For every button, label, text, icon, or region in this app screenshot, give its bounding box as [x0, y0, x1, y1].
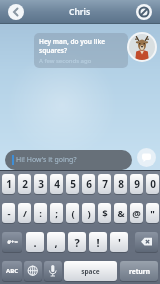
button[interactable]: ,: [47, 232, 65, 252]
button[interactable]: [136, 4, 152, 20]
button[interactable]: Hi! How's it going?: [5, 150, 132, 170]
staticText: !: [96, 235, 100, 250]
staticText: 8: [118, 177, 124, 191]
staticText: .: [33, 235, 37, 250]
staticText: #+=: [7, 238, 18, 246]
staticText: Hi! How's it going?: [16, 155, 77, 165]
button[interactable]: [8, 4, 24, 20]
button[interactable]: 1: [2, 174, 15, 194]
button[interactable]: 5: [66, 174, 79, 194]
button[interactable]: 3: [34, 174, 47, 194]
button[interactable]: [44, 261, 62, 281]
button[interactable]: #+=: [2, 232, 22, 252]
staticText: 2: [22, 177, 28, 191]
button[interactable]: [127, 32, 157, 62]
staticText: return: [129, 267, 150, 276]
button[interactable]: &: [114, 203, 127, 223]
staticText: 4: [54, 177, 60, 191]
button[interactable]: 4: [50, 174, 63, 194]
button[interactable]: ABC: [2, 261, 22, 281]
button[interactable]: 6: [82, 174, 95, 194]
staticText: A few seconds ago: [39, 57, 92, 65]
button[interactable]: !: [89, 232, 107, 252]
staticText: squares?: [39, 46, 67, 55]
staticText: 6: [86, 177, 92, 191]
button[interactable]: ": [146, 203, 159, 223]
staticText: ': [118, 235, 121, 250]
button[interactable]: -: [2, 203, 15, 223]
button[interactable]: ?: [68, 232, 86, 252]
button[interactable]: ;: [50, 203, 63, 223]
button[interactable]: .: [26, 232, 44, 252]
button[interactable]: Hey man, do you like: [34, 33, 128, 68]
staticText: /: [23, 207, 27, 220]
button[interactable]: return: [120, 261, 158, 281]
staticText: ): [87, 207, 91, 220]
staticText: ,: [54, 235, 58, 250]
staticText: 5: [70, 177, 76, 191]
staticText: Chris: [69, 6, 91, 18]
staticText: &: [117, 207, 125, 220]
staticText: space: [81, 267, 100, 276]
staticText: 1: [6, 177, 12, 191]
staticText: 9: [134, 177, 140, 191]
button[interactable]: 8: [114, 174, 127, 194]
button[interactable]: [137, 148, 156, 167]
button[interactable]: [135, 232, 158, 252]
button[interactable]: /: [18, 203, 31, 223]
button[interactable]: ': [110, 232, 128, 252]
button[interactable]: :: [34, 203, 47, 223]
staticText: @: [132, 207, 141, 220]
button[interactable]: 9: [130, 174, 143, 194]
staticText: ?: [74, 235, 80, 250]
button[interactable]: 7: [98, 174, 111, 194]
staticText: 0: [150, 177, 156, 191]
button[interactable]: $: [98, 203, 111, 223]
staticText: -: [7, 207, 11, 220]
button[interactable]: ): [82, 203, 95, 223]
staticText: 7: [102, 177, 108, 191]
button[interactable]: @: [130, 203, 143, 223]
staticText: (: [71, 207, 75, 220]
button[interactable]: space: [64, 261, 117, 281]
staticText: Hey man, do you like: [39, 37, 106, 46]
button[interactable]: [24, 261, 42, 281]
button[interactable]: (: [66, 203, 79, 223]
staticText: :: [39, 207, 42, 220]
staticText: 3: [38, 177, 44, 191]
staticText: ": [150, 207, 155, 220]
staticText: ;: [55, 207, 58, 220]
staticText: ABC: [6, 267, 18, 275]
staticText: $: [102, 207, 108, 220]
button[interactable]: 2: [18, 174, 31, 194]
button[interactable]: 0: [146, 174, 159, 194]
